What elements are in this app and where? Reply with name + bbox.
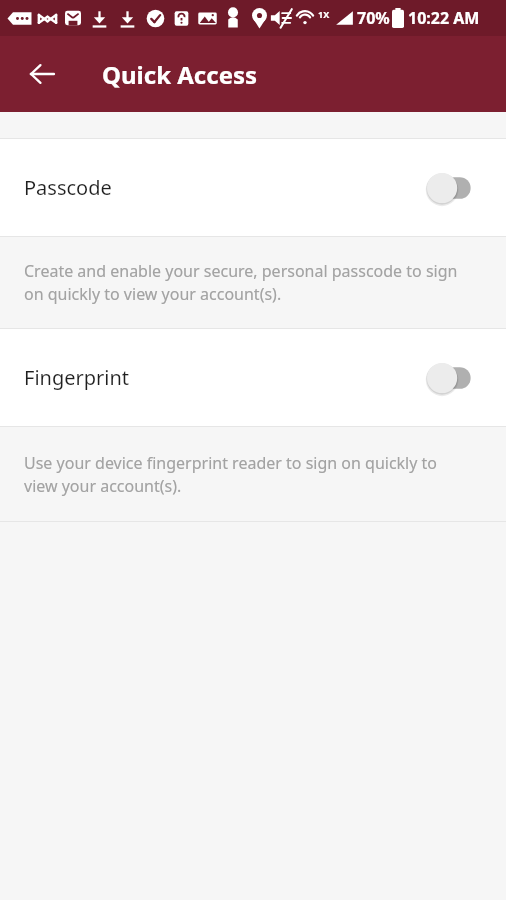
staticText: 10:22 AM xyxy=(408,7,480,29)
button[interactable]: Fingerprint xyxy=(0,329,506,426)
staticText: Fingerprint xyxy=(24,364,130,391)
staticText: Use your device fingerprint reader to si… xyxy=(24,452,464,497)
staticText: Quick Access xyxy=(102,58,258,91)
button[interactable]: Back xyxy=(18,50,66,98)
staticText: Passcode xyxy=(24,174,112,201)
button[interactable]: Toggle Fingerprint xyxy=(426,360,474,396)
staticText: 70% xyxy=(357,7,390,29)
button[interactable]: Toggle Passcode xyxy=(426,170,474,206)
staticText: Create and enable your secure, personal … xyxy=(24,260,464,305)
button[interactable]: Passcode xyxy=(0,139,506,236)
staticText: 1X xyxy=(318,8,330,20)
